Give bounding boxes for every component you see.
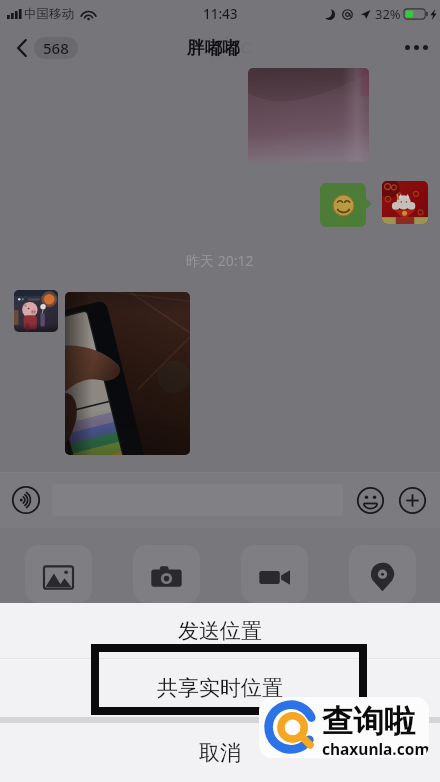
- staticText: chaxunla.com: [322, 738, 429, 758]
- button[interactable]: Back: [17, 37, 78, 59]
- staticText: 32%: [375, 5, 401, 23]
- button[interactable]: Photos: [25, 545, 92, 603]
- button[interactable]: More: [399, 487, 426, 514]
- button[interactable]: 发送位置: [0, 603, 440, 658]
- staticText: 昨天 20:12: [186, 251, 254, 270]
- button[interactable]: Voice input: [12, 486, 40, 514]
- button[interactable]: [14, 290, 58, 332]
- staticText: 取消: [199, 740, 241, 766]
- button[interactable]: Location: [349, 545, 416, 603]
- staticText: 568: [43, 38, 69, 58]
- staticText: 中国移动: [24, 6, 74, 22]
- staticText: 查询啦: [322, 702, 415, 741]
- button[interactable]: Emoji: [357, 487, 384, 514]
- button[interactable]: 共享实时位置: [0, 659, 440, 717]
- button[interactable]: Camera: [133, 545, 200, 603]
- button[interactable]: [382, 181, 428, 224]
- staticText: 共享实时位置: [157, 675, 283, 701]
- staticText: 11:43: [203, 5, 238, 23]
- staticText: 胖嘟嘟: [187, 37, 240, 59]
- button[interactable]: More options: [405, 45, 428, 50]
- staticText: 发送位置: [178, 618, 262, 644]
- button[interactable]: Video call: [241, 545, 308, 603]
- button[interactable]: 取消: [0, 723, 440, 782]
- button[interactable]: [65, 292, 190, 455]
- button[interactable]: [248, 68, 369, 162]
